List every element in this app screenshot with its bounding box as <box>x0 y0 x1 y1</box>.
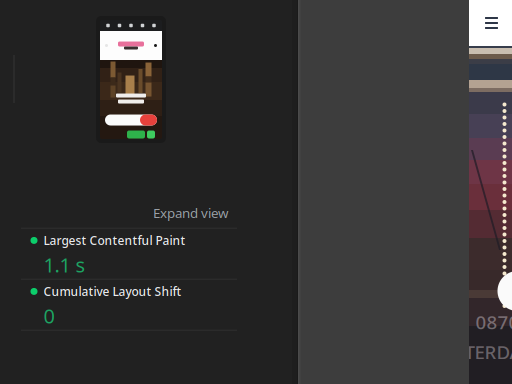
staticText: Largest Contentful Paint <box>43 232 185 248</box>
button[interactable]: Largest Contentful Paint <box>21 229 236 279</box>
button[interactable]: Cumulative Layout Shift <box>21 280 236 330</box>
staticText: 0870 <box>475 310 512 334</box>
staticText: Cumulative Layout Shift <box>43 283 181 299</box>
staticText: 1.1 s <box>43 251 85 278</box>
button[interactable]: Expand view <box>149 201 232 225</box>
staticText: TERDAM <box>464 340 512 364</box>
staticText: Expand view <box>153 204 228 222</box>
button[interactable]: Open menu <box>480 12 503 34</box>
staticText: 0 <box>43 302 54 329</box>
